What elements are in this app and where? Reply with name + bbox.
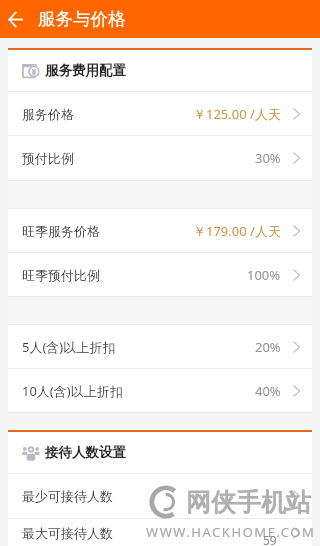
staticText: 旺季服务价格 xyxy=(22,223,100,239)
button[interactable]: 预付比例 xyxy=(8,136,312,180)
button[interactable]: 最少可接待人数 xyxy=(8,474,312,518)
button[interactable]: 旺季预付比例 xyxy=(8,253,312,296)
staticText: ￥125.00 /人天 xyxy=(193,105,281,123)
button[interactable]: 10人(含)以上折扣 xyxy=(8,369,312,412)
staticText: 59 xyxy=(263,532,277,546)
staticText: 服务与价格 xyxy=(38,8,126,30)
button[interactable]: Back xyxy=(0,4,30,34)
staticText: 40% xyxy=(255,382,281,400)
staticText: 100% xyxy=(247,266,281,284)
staticText: 最大可接待人数 xyxy=(22,525,113,541)
button[interactable]: 5人(含)以上折扣 xyxy=(8,325,312,368)
button[interactable]: 旺季服务价格 xyxy=(8,209,312,252)
button[interactable]: 最大可接待人数 xyxy=(8,519,312,546)
staticText: 5人(含)以上折扣 xyxy=(22,338,116,356)
staticText: 30% xyxy=(255,149,281,167)
staticText: 服务价格 xyxy=(22,106,74,122)
staticText: 旺季预付比例 xyxy=(22,267,100,283)
staticText: 20% xyxy=(255,338,281,356)
staticText: 最少可接待人数 xyxy=(22,488,113,504)
staticText: 10人(含)以上折扣 xyxy=(22,382,123,400)
staticText: 接待人数设置 xyxy=(45,444,126,461)
staticText: 网侠手机站 xyxy=(186,487,311,518)
staticText: ￥179.00 /人天 xyxy=(193,222,281,240)
staticText: 预付比例 xyxy=(22,150,74,166)
button[interactable]: 服务价格 xyxy=(8,92,312,135)
staticText: 服务费用配置 xyxy=(45,62,126,79)
staticText: WWW.HACKHOME.COM xyxy=(146,523,316,541)
